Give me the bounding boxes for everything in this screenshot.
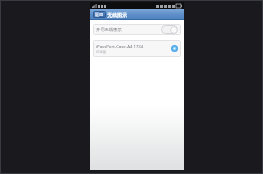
button[interactable]: Toggle wireless display xyxy=(161,25,178,34)
staticText: 无线图示 xyxy=(107,12,127,18)
staticText: 开启无线图示 xyxy=(96,27,122,32)
staticText: iPassPort-Case-A4 1734 xyxy=(96,43,144,49)
staticText: 返回 xyxy=(95,12,104,17)
button[interactable]: 返回 xyxy=(93,11,106,18)
button[interactable]: iPassPort-Case-A4 1734 xyxy=(93,40,181,57)
button[interactable]: 开启无线图示 xyxy=(93,24,181,35)
staticText: 已连接 xyxy=(96,50,107,54)
button[interactable]: Device info xyxy=(171,45,178,52)
